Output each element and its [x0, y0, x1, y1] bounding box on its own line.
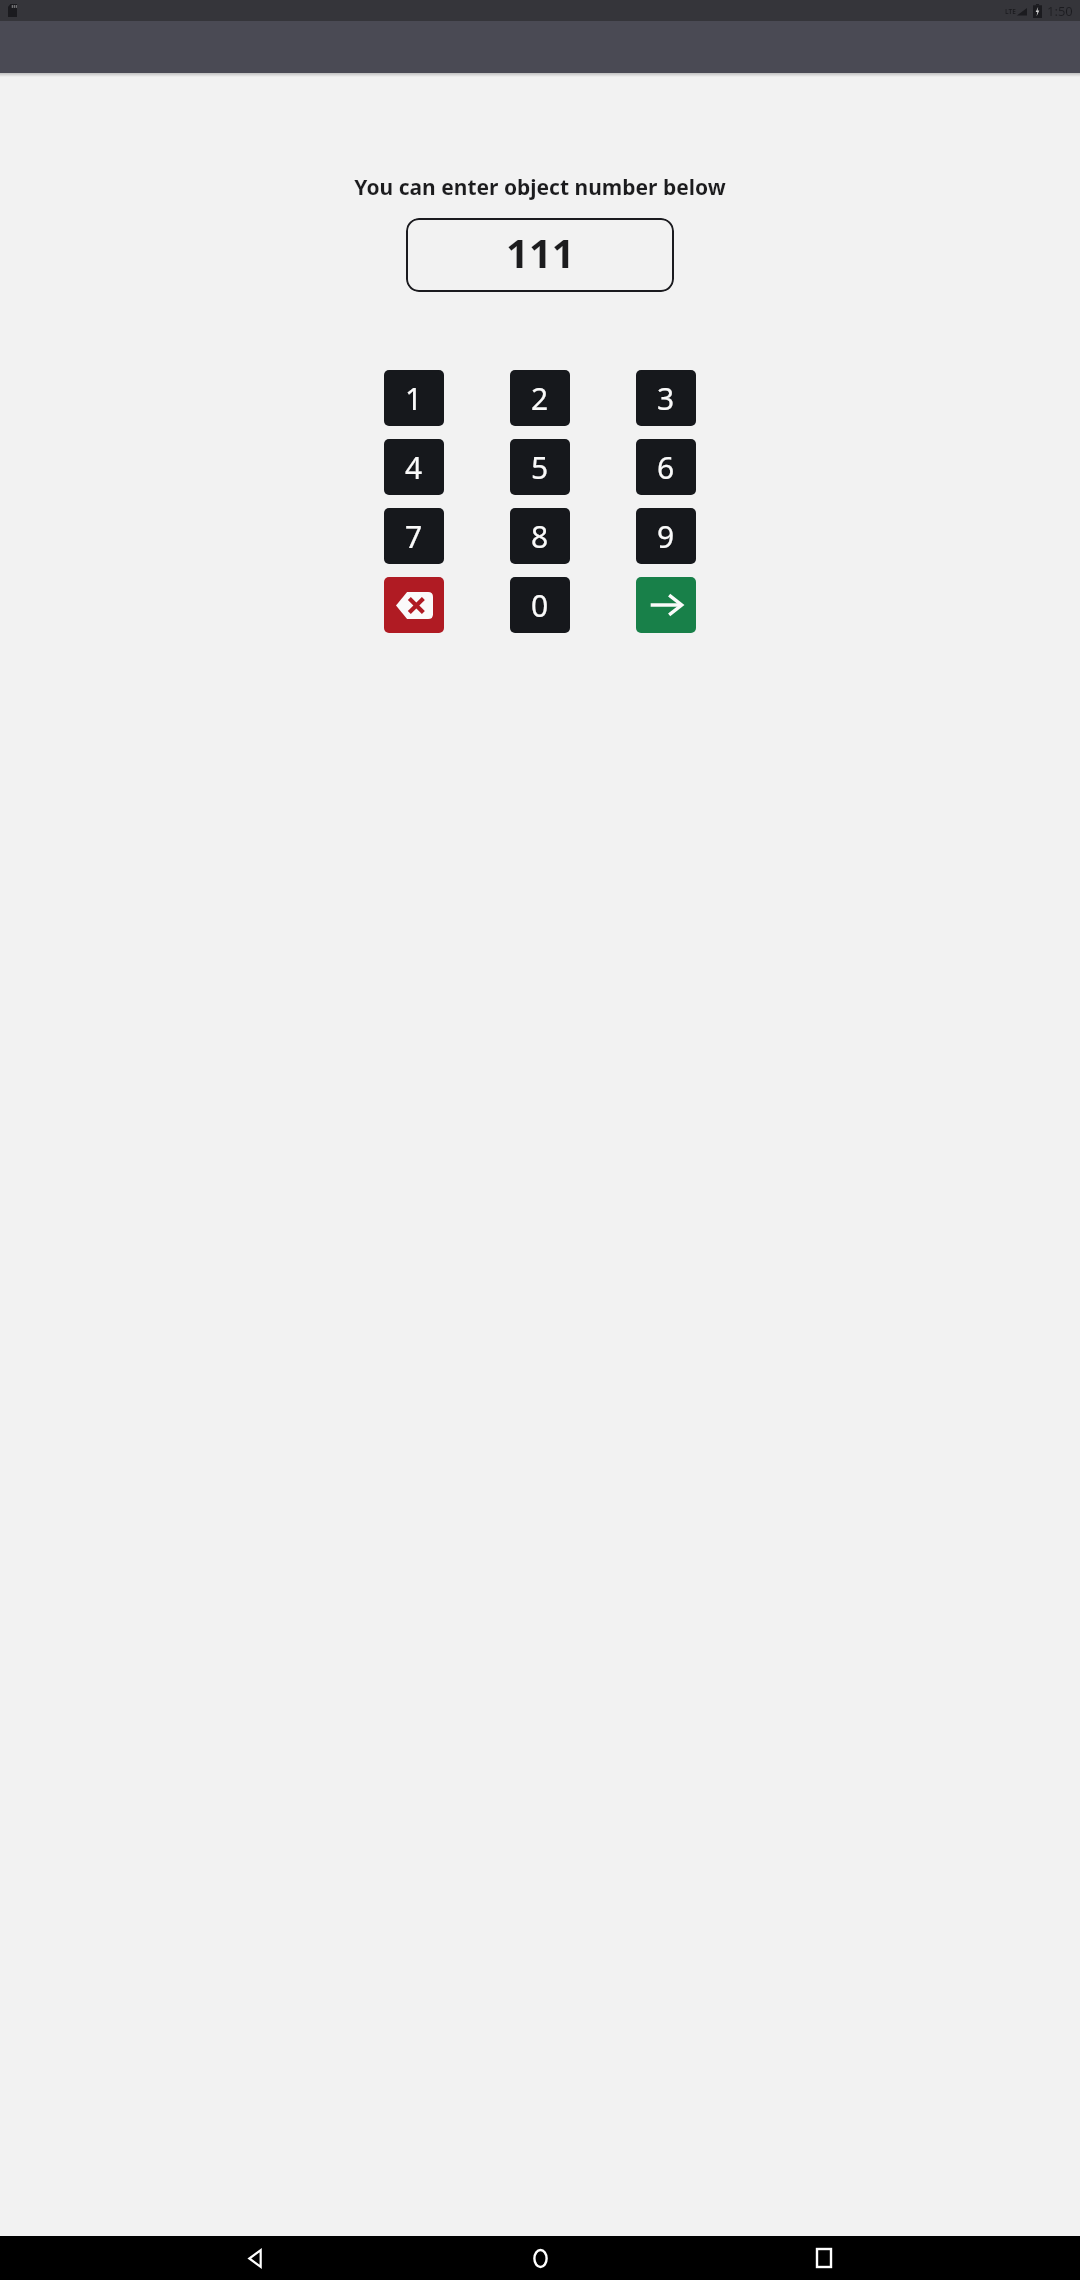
staticText: You can enter object number below	[354, 173, 726, 202]
button[interactable]: 111	[406, 218, 674, 292]
staticText: 1:50	[1047, 2, 1073, 20]
staticText: 9	[657, 516, 675, 557]
staticText: 3	[657, 378, 675, 419]
button[interactable]: 1	[384, 370, 444, 426]
button[interactable]: 4	[384, 439, 444, 495]
button[interactable]: 9	[636, 508, 696, 564]
staticText: 5	[531, 447, 549, 488]
button[interactable]: 3	[636, 370, 696, 426]
button[interactable]: 8	[510, 508, 570, 564]
staticText: 4	[405, 447, 423, 488]
button[interactable]: 7	[384, 508, 444, 564]
button[interactable]: Recents	[796, 2236, 852, 2280]
staticText: 8	[531, 516, 549, 557]
button[interactable]: Submit	[636, 577, 696, 633]
staticText: 7	[405, 516, 423, 557]
staticText: 0	[531, 585, 549, 626]
button[interactable]: 2	[510, 370, 570, 426]
staticText: 6	[657, 447, 675, 488]
button[interactable]: 6	[636, 439, 696, 495]
staticText: 1	[405, 378, 423, 419]
button[interactable]: 0	[510, 577, 570, 633]
staticText: LTE	[1005, 7, 1016, 16]
button[interactable]: Backspace	[384, 577, 444, 633]
button[interactable]: Back	[228, 2236, 284, 2280]
button[interactable]: 5	[510, 439, 570, 495]
button[interactable]: Home	[512, 2236, 568, 2280]
staticText: 111	[506, 225, 575, 279]
staticText: 2	[531, 378, 549, 419]
